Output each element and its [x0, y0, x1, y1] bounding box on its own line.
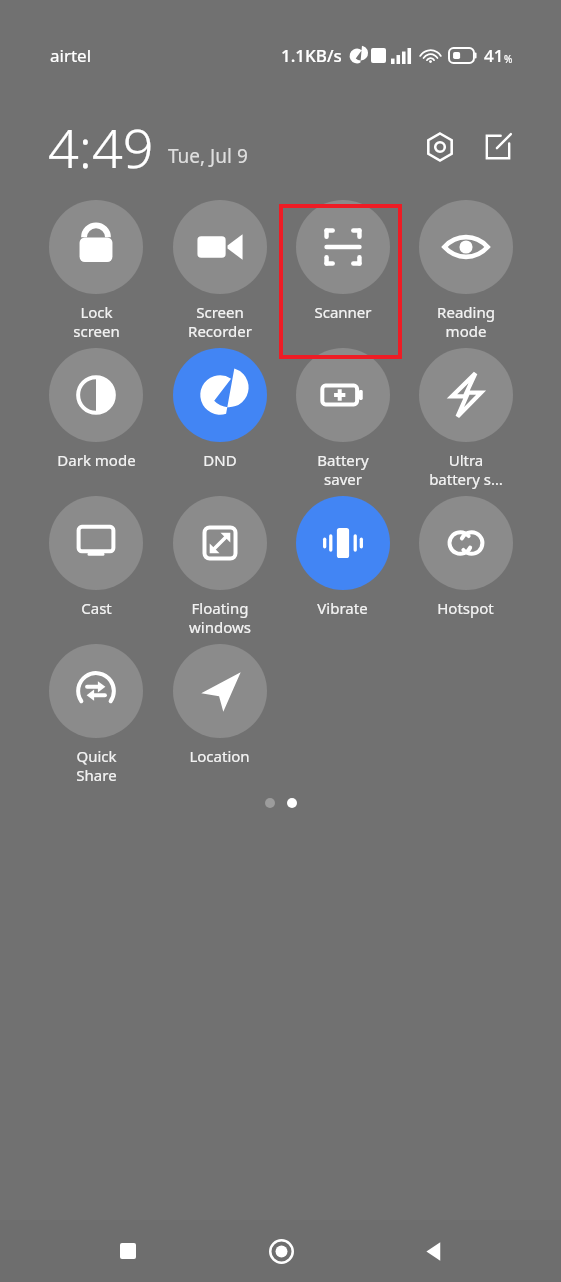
- staticText: DND: [203, 450, 237, 470]
- other: Hotspot: [419, 496, 513, 590]
- button[interactable]: Hotspot: [404, 494, 527, 642]
- button[interactable]: Reading mode: [404, 198, 527, 346]
- other: Lock screen: [49, 200, 143, 294]
- other: Scanner: [296, 200, 390, 294]
- button[interactable]: Scanner: [281, 198, 404, 346]
- staticText: Dark mode: [57, 450, 136, 470]
- other: Location: [173, 644, 267, 738]
- button[interactable]: Recents: [104, 1227, 152, 1275]
- other: Cast: [49, 496, 143, 590]
- staticText: Cast: [81, 598, 112, 618]
- other: Dark mode: [49, 348, 143, 442]
- staticText: Battery saver: [317, 450, 369, 489]
- other: Vibrate: [296, 496, 390, 590]
- button[interactable]: Do not disturb: [158, 346, 281, 494]
- staticText: Location: [189, 746, 250, 766]
- staticText: 41: [484, 44, 504, 67]
- staticText: Lock screen: [73, 302, 120, 341]
- button[interactable]: Ultra battery saver: [404, 346, 527, 494]
- staticText: Scanner: [314, 302, 372, 322]
- staticText: Reading mode: [437, 302, 495, 341]
- staticText: airtel: [50, 44, 92, 67]
- other: Do not disturb: [173, 348, 267, 442]
- button[interactable]: Battery saver: [281, 346, 404, 494]
- staticText: Quick Share: [76, 746, 117, 785]
- staticText: Screen Recorder: [188, 302, 252, 341]
- other: Floating windows: [173, 496, 267, 590]
- button[interactable]: Settings: [419, 126, 461, 168]
- staticText: 4:49: [48, 110, 154, 184]
- button[interactable]: Home: [257, 1227, 305, 1275]
- button[interactable]: Dark mode: [34, 346, 158, 494]
- other: Battery saver: [296, 348, 390, 442]
- button[interactable]: Screen Recorder: [158, 198, 281, 346]
- staticText: 1.1KB/s: [281, 44, 342, 67]
- button[interactable]: Back: [409, 1227, 457, 1275]
- staticText: Tue, Jul 9: [168, 143, 248, 169]
- staticText: Hotspot: [437, 598, 494, 618]
- other: Ultra battery saver: [419, 348, 513, 442]
- button[interactable]: Lock screen: [34, 198, 158, 346]
- button[interactable]: Edit: [477, 126, 519, 168]
- button[interactable]: Floating windows: [158, 494, 281, 642]
- staticText: %: [504, 52, 513, 66]
- other: Screen Recorder: [173, 200, 267, 294]
- button[interactable]: Cast: [34, 494, 158, 642]
- button[interactable]: Location: [158, 642, 281, 790]
- other: Reading mode: [419, 200, 513, 294]
- staticText: Vibrate: [317, 598, 368, 618]
- staticText: Ultra battery s…: [429, 450, 503, 489]
- staticText: Floating windows: [189, 598, 251, 637]
- button[interactable]: Quick Share: [34, 642, 158, 790]
- other: Quick Share: [49, 644, 143, 738]
- button[interactable]: Vibrate: [281, 494, 404, 642]
